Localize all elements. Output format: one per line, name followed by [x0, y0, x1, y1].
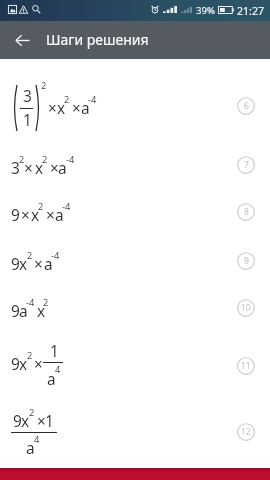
staticText: a	[58, 158, 67, 179]
staticText: 10	[241, 302, 251, 314]
staticText: 1	[45, 411, 54, 432]
staticText: 3	[11, 158, 20, 179]
staticText: 2	[38, 200, 44, 213]
button[interactable]	[0, 200, 270, 248]
button[interactable]: Step 9	[237, 252, 255, 270]
staticText: 2	[29, 406, 35, 419]
staticText: ×	[37, 411, 46, 432]
staticText: 9	[244, 255, 249, 267]
staticText: a	[81, 98, 90, 119]
staticText: ×	[34, 354, 43, 375]
staticText: x	[57, 98, 66, 119]
staticText: 8	[244, 206, 249, 218]
staticText: a	[47, 369, 56, 390]
staticText: a	[26, 438, 35, 459]
staticText: 9	[11, 205, 20, 226]
staticText: a	[55, 205, 64, 226]
staticText: ×	[34, 254, 43, 275]
staticText: 9	[11, 301, 20, 322]
button[interactable]: Step 10	[237, 299, 255, 317]
button[interactable]: Step 6	[237, 97, 255, 115]
staticText: 9	[13, 411, 22, 432]
staticText: 7	[244, 159, 249, 171]
staticText: ×	[21, 205, 30, 226]
button[interactable]: Step 8	[237, 203, 255, 221]
staticText: x	[19, 354, 28, 375]
staticText: a	[19, 301, 28, 322]
button[interactable]	[0, 248, 270, 296]
staticText: -4	[66, 153, 75, 166]
button[interactable]: Step 7	[237, 156, 255, 174]
staticText: 2	[64, 93, 70, 106]
button[interactable]	[0, 296, 270, 352]
staticText: x	[21, 411, 30, 432]
staticText: 6	[244, 100, 249, 112]
staticText: -4	[51, 249, 60, 262]
button[interactable]	[0, 344, 270, 402]
staticText: 3	[23, 86, 32, 107]
staticText: 2	[42, 153, 48, 166]
staticText: 4	[34, 433, 40, 446]
staticText: x	[31, 205, 40, 226]
staticText: -4	[26, 296, 35, 309]
staticText: 2	[27, 349, 33, 362]
button[interactable]: Back	[7, 25, 37, 55]
staticText: 39%	[196, 4, 215, 17]
staticText: -4	[62, 200, 71, 213]
staticText: 9	[11, 354, 20, 375]
button[interactable]	[0, 402, 270, 466]
staticText: 2	[43, 296, 49, 309]
staticText: 2	[19, 153, 25, 166]
staticText: ×	[50, 158, 59, 179]
button[interactable]: Step 12	[237, 423, 255, 441]
staticText: ×	[24, 158, 33, 179]
staticText: x	[35, 158, 44, 179]
staticText: a	[44, 254, 53, 275]
staticText: ×	[48, 98, 57, 119]
staticText: 1	[50, 341, 59, 362]
staticText: Шаги решения	[46, 30, 149, 49]
staticText: 2	[41, 79, 47, 92]
button[interactable]	[0, 153, 270, 200]
staticText: ×	[72, 98, 81, 119]
staticText: x	[37, 301, 46, 322]
staticText: 12	[241, 426, 251, 438]
button[interactable]	[0, 60, 270, 153]
staticText: 21:27	[237, 4, 265, 18]
staticText: 1	[23, 110, 32, 131]
staticText: 9	[11, 254, 20, 275]
staticText: -4	[88, 93, 97, 106]
staticText: 2	[27, 249, 33, 262]
staticText: ×	[46, 205, 55, 226]
button[interactable]: Step 11	[237, 357, 255, 375]
staticText: 4	[55, 363, 61, 376]
staticText: x	[19, 254, 28, 275]
staticText: 11	[241, 360, 251, 372]
